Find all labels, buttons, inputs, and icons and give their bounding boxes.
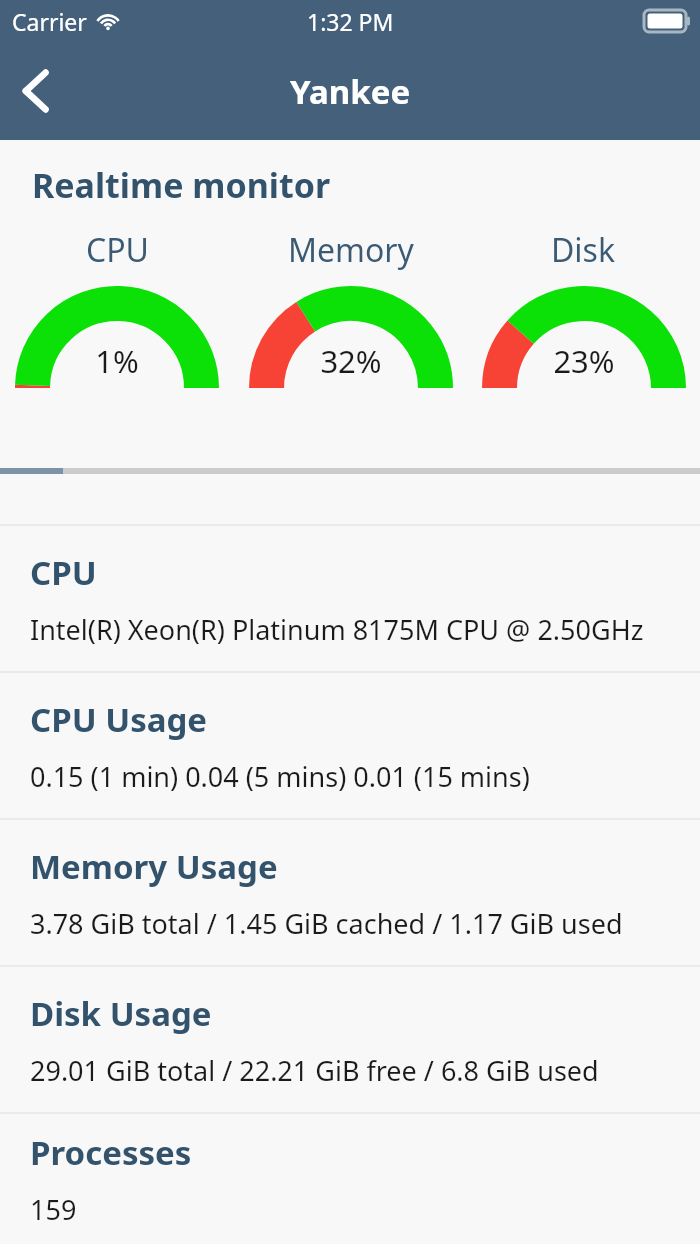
staticText: CPU: [86, 228, 149, 272]
button[interactable]: Memory Usage: [0, 820, 700, 965]
button[interactable]: CPU: [0, 526, 700, 671]
staticText: 23%: [553, 340, 615, 382]
button[interactable]: Disk Usage: [0, 967, 700, 1112]
staticText: Disk: [551, 228, 616, 272]
staticText: Disk Usage: [30, 991, 212, 1036]
staticText: Carrier: [12, 6, 87, 37]
staticText: Memory Usage: [30, 844, 278, 889]
staticText: 1:32 PM: [307, 6, 394, 37]
staticText: 159: [30, 1191, 77, 1228]
staticText: Memory: [288, 228, 414, 272]
staticText: Yankee: [290, 69, 411, 114]
staticText: 29.01 GiB total / 22.21 GiB free / 6.8 G…: [30, 1052, 599, 1089]
staticText: Intel(R) Xeon(R) Platinum 8175M CPU @ 2.…: [30, 611, 644, 648]
staticText: Realtime monitor: [32, 162, 331, 208]
button[interactable]: Back: [0, 55, 72, 127]
staticText: 32%: [320, 340, 382, 382]
button[interactable]: Processes: [0, 1114, 700, 1244]
button[interactable]: CPU Usage: [0, 673, 700, 818]
staticText: CPU: [30, 550, 97, 595]
staticText: 1%: [95, 340, 139, 382]
staticText: CPU Usage: [30, 697, 208, 742]
staticText: 3.78 GiB total / 1.45 GiB cached / 1.17 …: [30, 905, 623, 942]
staticText: Processes: [30, 1130, 192, 1175]
staticText: 0.15 (1 min) 0.04 (5 mins) 0.01 (15 mins…: [30, 758, 530, 795]
